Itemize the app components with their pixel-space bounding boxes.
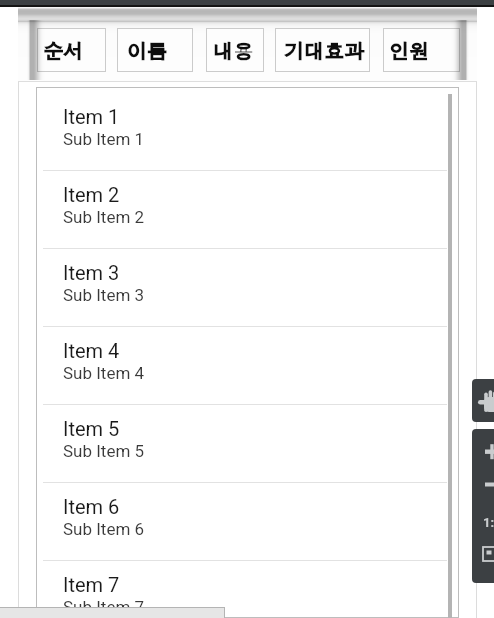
staticText: 인원 [389, 36, 429, 64]
staticText: Item 2 [63, 183, 120, 206]
button[interactable]: Item 1 [36, 93, 459, 171]
button[interactable]: Zoom to fit [472, 541, 494, 579]
staticText: Item 5 [63, 417, 120, 440]
button[interactable]: 기대효과 [275, 28, 370, 72]
staticText: 1:1 [483, 515, 494, 530]
button[interactable]: Item 2 [36, 171, 459, 249]
staticText: Sub Item 1 [63, 129, 145, 149]
staticText: Sub Item 6 [63, 519, 145, 539]
button[interactable]: Item 5 [36, 405, 459, 483]
staticText: Sub Item 7 [63, 597, 145, 617]
button[interactable]: Item 7 [36, 561, 459, 618]
button[interactable]: 인원 [383, 28, 460, 72]
staticText: 순서 [43, 36, 83, 64]
button[interactable]: 1:1 [483, 513, 494, 531]
button[interactable]: Pan [472, 379, 494, 422]
staticText: Item 3 [63, 261, 120, 284]
staticText: Sub Item 4 [63, 363, 145, 383]
staticText: 내용 [213, 36, 253, 64]
staticText: Sub Item 3 [63, 285, 145, 305]
button[interactable]: 내용 [206, 28, 264, 72]
button[interactable]: Zoom out [472, 471, 494, 505]
button[interactable]: 이름 [117, 28, 193, 72]
staticText: Item 7 [63, 573, 120, 596]
button[interactable]: Item 6 [36, 483, 459, 561]
staticText: Sub Item 2 [63, 207, 145, 227]
staticText: Sub Item 5 [63, 441, 145, 461]
staticText: 이름 [127, 36, 167, 64]
staticText: Item 4 [63, 339, 120, 362]
staticText: 기대효과 [284, 36, 364, 64]
button[interactable]: Zoom in [472, 429, 494, 467]
button[interactable]: Item 4 [36, 327, 459, 405]
button[interactable]: 순서 [37, 28, 106, 72]
button[interactable]: Item 3 [36, 249, 459, 327]
staticText: Item 1 [63, 105, 120, 128]
staticText: Item 6 [63, 495, 120, 518]
